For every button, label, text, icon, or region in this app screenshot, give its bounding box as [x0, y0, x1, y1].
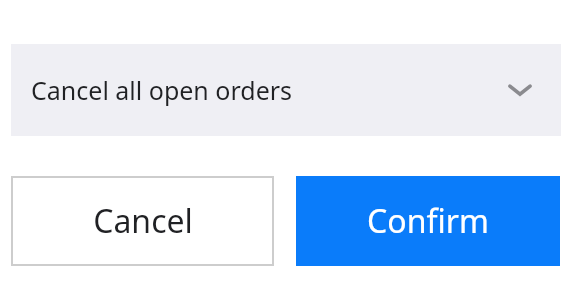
- button[interactable]: Cancel all open orders: [11, 44, 561, 136]
- button[interactable]: Cancel: [11, 176, 274, 266]
- staticText: Cancel: [93, 199, 193, 243]
- staticText: Confirm: [367, 199, 489, 243]
- other: Expand: [508, 78, 532, 102]
- staticText: Cancel all open orders: [31, 73, 293, 107]
- button[interactable]: Confirm: [296, 176, 560, 266]
